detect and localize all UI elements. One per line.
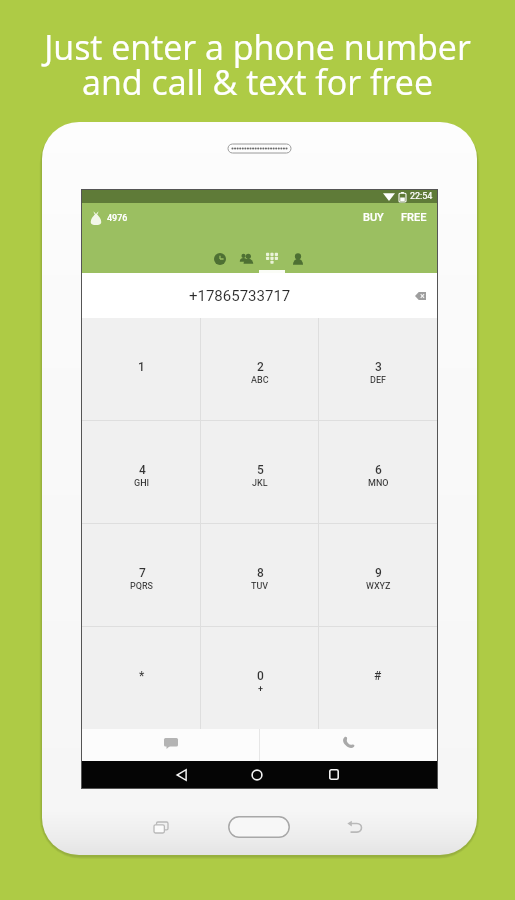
staticText: 2 bbox=[257, 360, 264, 374]
button[interactable]: Send message bbox=[82, 729, 259, 761]
button[interactable]: Home bbox=[228, 816, 290, 838]
staticText: PQRS bbox=[130, 581, 154, 592]
button[interactable]: Back bbox=[168, 761, 194, 788]
staticText: * bbox=[139, 669, 145, 683]
button[interactable]: 2 bbox=[201, 318, 319, 420]
staticText: FREE bbox=[401, 211, 427, 224]
staticText: 0 bbox=[257, 669, 264, 683]
button[interactable]: * bbox=[82, 627, 201, 729]
button[interactable]: Home bbox=[244, 761, 270, 788]
button[interactable]: Recent apps bbox=[149, 815, 173, 839]
staticText: Just enter a phone number and call & tex… bbox=[44, 24, 471, 105]
staticText: 6 bbox=[375, 463, 382, 477]
staticText: + bbox=[258, 684, 264, 695]
button[interactable]: 4 bbox=[82, 421, 201, 523]
button[interactable]: Back bbox=[343, 815, 367, 839]
button[interactable]: Backspace bbox=[410, 286, 430, 306]
staticText: 4 bbox=[139, 463, 146, 477]
staticText: 4976 bbox=[107, 213, 128, 224]
button[interactable]: Dialpad bbox=[259, 245, 285, 273]
button[interactable]: BUY bbox=[359, 203, 388, 232]
staticText: MNO bbox=[368, 478, 389, 489]
button[interactable]: 4976 bbox=[88, 207, 130, 229]
button[interactable]: 5 bbox=[201, 421, 319, 523]
staticText: ABC bbox=[251, 375, 269, 386]
staticText: BUY bbox=[363, 211, 384, 224]
button[interactable]: # bbox=[319, 627, 437, 729]
staticText: 9 bbox=[375, 566, 382, 580]
staticText: TUV bbox=[251, 581, 269, 592]
button[interactable]: Call bbox=[260, 729, 437, 761]
staticText: DEF bbox=[370, 375, 386, 386]
button[interactable]: Contacts bbox=[233, 245, 259, 273]
button[interactable]: 1 bbox=[82, 318, 201, 420]
staticText: GHI bbox=[134, 478, 150, 489]
button[interactable]: Profile bbox=[285, 245, 311, 273]
button[interactable]: 9 bbox=[319, 524, 437, 626]
button[interactable]: 0 bbox=[201, 627, 319, 729]
staticText: 3 bbox=[375, 360, 382, 374]
staticText: 8 bbox=[257, 566, 264, 580]
button[interactable]: 8 bbox=[201, 524, 319, 626]
button[interactable]: 3 bbox=[319, 318, 437, 420]
button[interactable]: 7 bbox=[82, 524, 201, 626]
button[interactable]: 6 bbox=[319, 421, 437, 523]
button[interactable]: Recent apps bbox=[321, 761, 347, 788]
staticText: JKL bbox=[252, 478, 268, 489]
staticText: 22:54 bbox=[410, 191, 433, 202]
button[interactable]: FREE bbox=[397, 203, 431, 232]
button[interactable]: Recents bbox=[207, 245, 233, 273]
staticText: # bbox=[374, 669, 382, 683]
staticText: 5 bbox=[257, 463, 264, 477]
staticText: 1 bbox=[138, 360, 145, 374]
staticText: 7 bbox=[139, 566, 146, 580]
staticText: +17865733717 bbox=[189, 287, 291, 305]
staticText: WXYZ bbox=[366, 581, 391, 592]
